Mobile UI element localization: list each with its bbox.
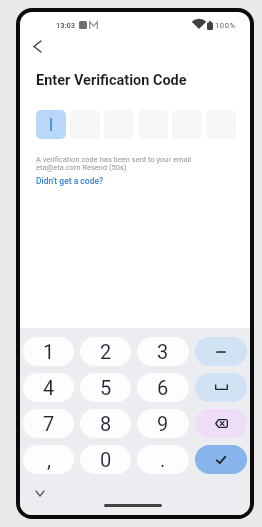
button[interactable]: 5 xyxy=(80,373,131,402)
staticText: 5 xyxy=(100,376,112,399)
button[interactable] xyxy=(28,37,46,55)
button[interactable] xyxy=(195,337,247,366)
staticText: Didn't get a code? xyxy=(36,176,104,186)
staticText: , xyxy=(47,448,51,471)
staticText: 13:03 xyxy=(56,21,76,30)
staticText: 6 xyxy=(157,376,169,399)
staticText: 3 xyxy=(157,340,169,363)
staticText: 7 xyxy=(43,412,55,435)
button[interactable]: 6 xyxy=(137,373,189,402)
button[interactable] xyxy=(36,110,66,139)
button[interactable] xyxy=(195,409,247,438)
button[interactable]: 8 xyxy=(80,409,131,438)
button[interactable] xyxy=(195,373,247,402)
staticText: 2 xyxy=(100,340,112,363)
staticText: Enter Verification Code xyxy=(36,72,187,89)
button[interactable]: Didn't get a code? xyxy=(36,176,104,186)
staticText: 8 xyxy=(100,412,112,435)
staticText: . xyxy=(160,448,166,471)
staticText: eta@eta.com Resend (50s) xyxy=(36,163,127,172)
button[interactable]: 1 xyxy=(23,337,74,366)
button[interactable]: 4 xyxy=(23,373,74,402)
button[interactable]: 7 xyxy=(23,409,74,438)
button[interactable]: 3 xyxy=(137,337,189,366)
button[interactable]: . xyxy=(137,445,189,474)
staticText: 100% xyxy=(215,21,236,30)
button[interactable]: 0 xyxy=(80,445,131,474)
button[interactable]: 9 xyxy=(137,409,189,438)
staticText: 4 xyxy=(43,376,55,399)
staticText: 1 xyxy=(43,340,55,363)
staticText: 0 xyxy=(100,448,112,471)
button[interactable] xyxy=(195,445,247,474)
button[interactable]: , xyxy=(23,445,74,474)
staticText: 9 xyxy=(157,412,169,435)
button[interactable]: 2 xyxy=(80,337,131,366)
staticText: A verification code has been sent to you… xyxy=(36,155,192,164)
